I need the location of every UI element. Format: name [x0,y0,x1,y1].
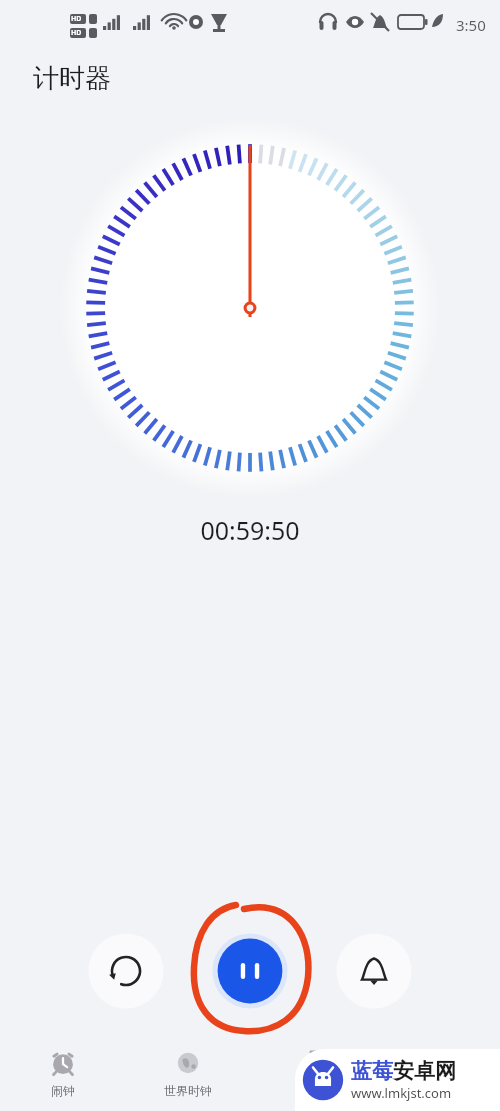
staticText: 计时器 [420,1083,456,1098]
button[interactable]: 世界时钟 [133,1035,243,1111]
staticText: 蓝莓 [351,1058,393,1084]
staticText: 00:59:50 [0,513,500,547]
staticText: 3:50 [456,15,486,35]
staticText: 闹钟 [51,1083,75,1098]
staticText: 安卓网 [393,1058,456,1084]
button[interactable]: 闹钟 [8,1035,118,1111]
button[interactable]: Alarm sound [334,931,414,1011]
staticText: 秒表 [301,1083,325,1098]
staticText: HD [71,14,82,24]
button[interactable]: Pause [210,931,290,1011]
button[interactable]: Reset [86,931,166,1011]
staticText: 世界时钟 [164,1083,212,1098]
button[interactable]: 秒表 [258,1035,368,1111]
button[interactable]: 计时器 [383,1035,493,1111]
staticText: HD [71,28,82,38]
staticText: www.lmkjst.com [351,1084,452,1102]
staticText: 计时器 [33,62,111,95]
